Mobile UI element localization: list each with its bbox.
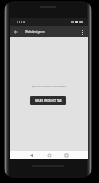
- button[interactable]: More options: [77, 27, 87, 37]
- button[interactable]: NEUES PRODUKT TAB: [30, 96, 66, 105]
- staticText: Jetzt ein Angebot hinzufügen: [10, 84, 88, 87]
- button[interactable]: Back: [27, 151, 36, 159]
- button[interactable]: Navigate up: [11, 27, 21, 37]
- staticText: NEUES PRODUKT TAB: [35, 99, 62, 103]
- button[interactable]: Home: [45, 151, 54, 159]
- button[interactable]: Recent apps: [62, 151, 71, 159]
- staticText: Webdesignen: [25, 30, 45, 34]
